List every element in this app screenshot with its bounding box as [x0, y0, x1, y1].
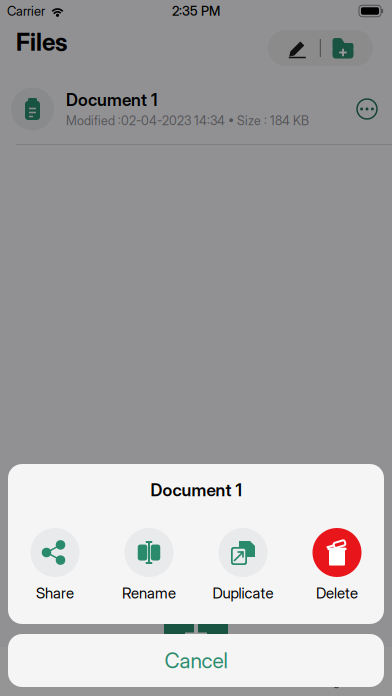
staticText: Carrier — [7, 3, 45, 19]
button[interactable]: New folder — [321, 30, 365, 66]
staticText: Document 1 — [66, 90, 157, 110]
button[interactable]: Duplicate — [196, 528, 290, 601]
button[interactable]: Share — [8, 528, 102, 601]
button[interactable]: Files — [0, 647, 131, 696]
button[interactable]: Document 1 — [0, 74, 392, 144]
staticText: Duplicate — [212, 584, 273, 602]
staticText: Share — [36, 584, 74, 602]
staticText: Settings — [308, 676, 344, 689]
staticText: Document 1 — [150, 480, 241, 500]
staticText: Files — [55, 676, 75, 689]
staticText: Cancel — [164, 648, 227, 673]
staticText: Rename — [122, 584, 176, 602]
staticText: Delete — [316, 584, 358, 602]
button[interactable]: Delete — [290, 528, 384, 601]
button[interactable]: Rename — [102, 528, 196, 601]
button[interactable]: Cancel — [8, 634, 384, 687]
button[interactable]: Edit — [276, 30, 320, 66]
staticText: Modified :02-04-2023 14:34 • Size : 184 … — [66, 113, 309, 128]
staticText: Files — [16, 27, 67, 56]
button[interactable]: Settings — [261, 647, 392, 696]
staticText: 2:35 PM — [172, 3, 220, 19]
